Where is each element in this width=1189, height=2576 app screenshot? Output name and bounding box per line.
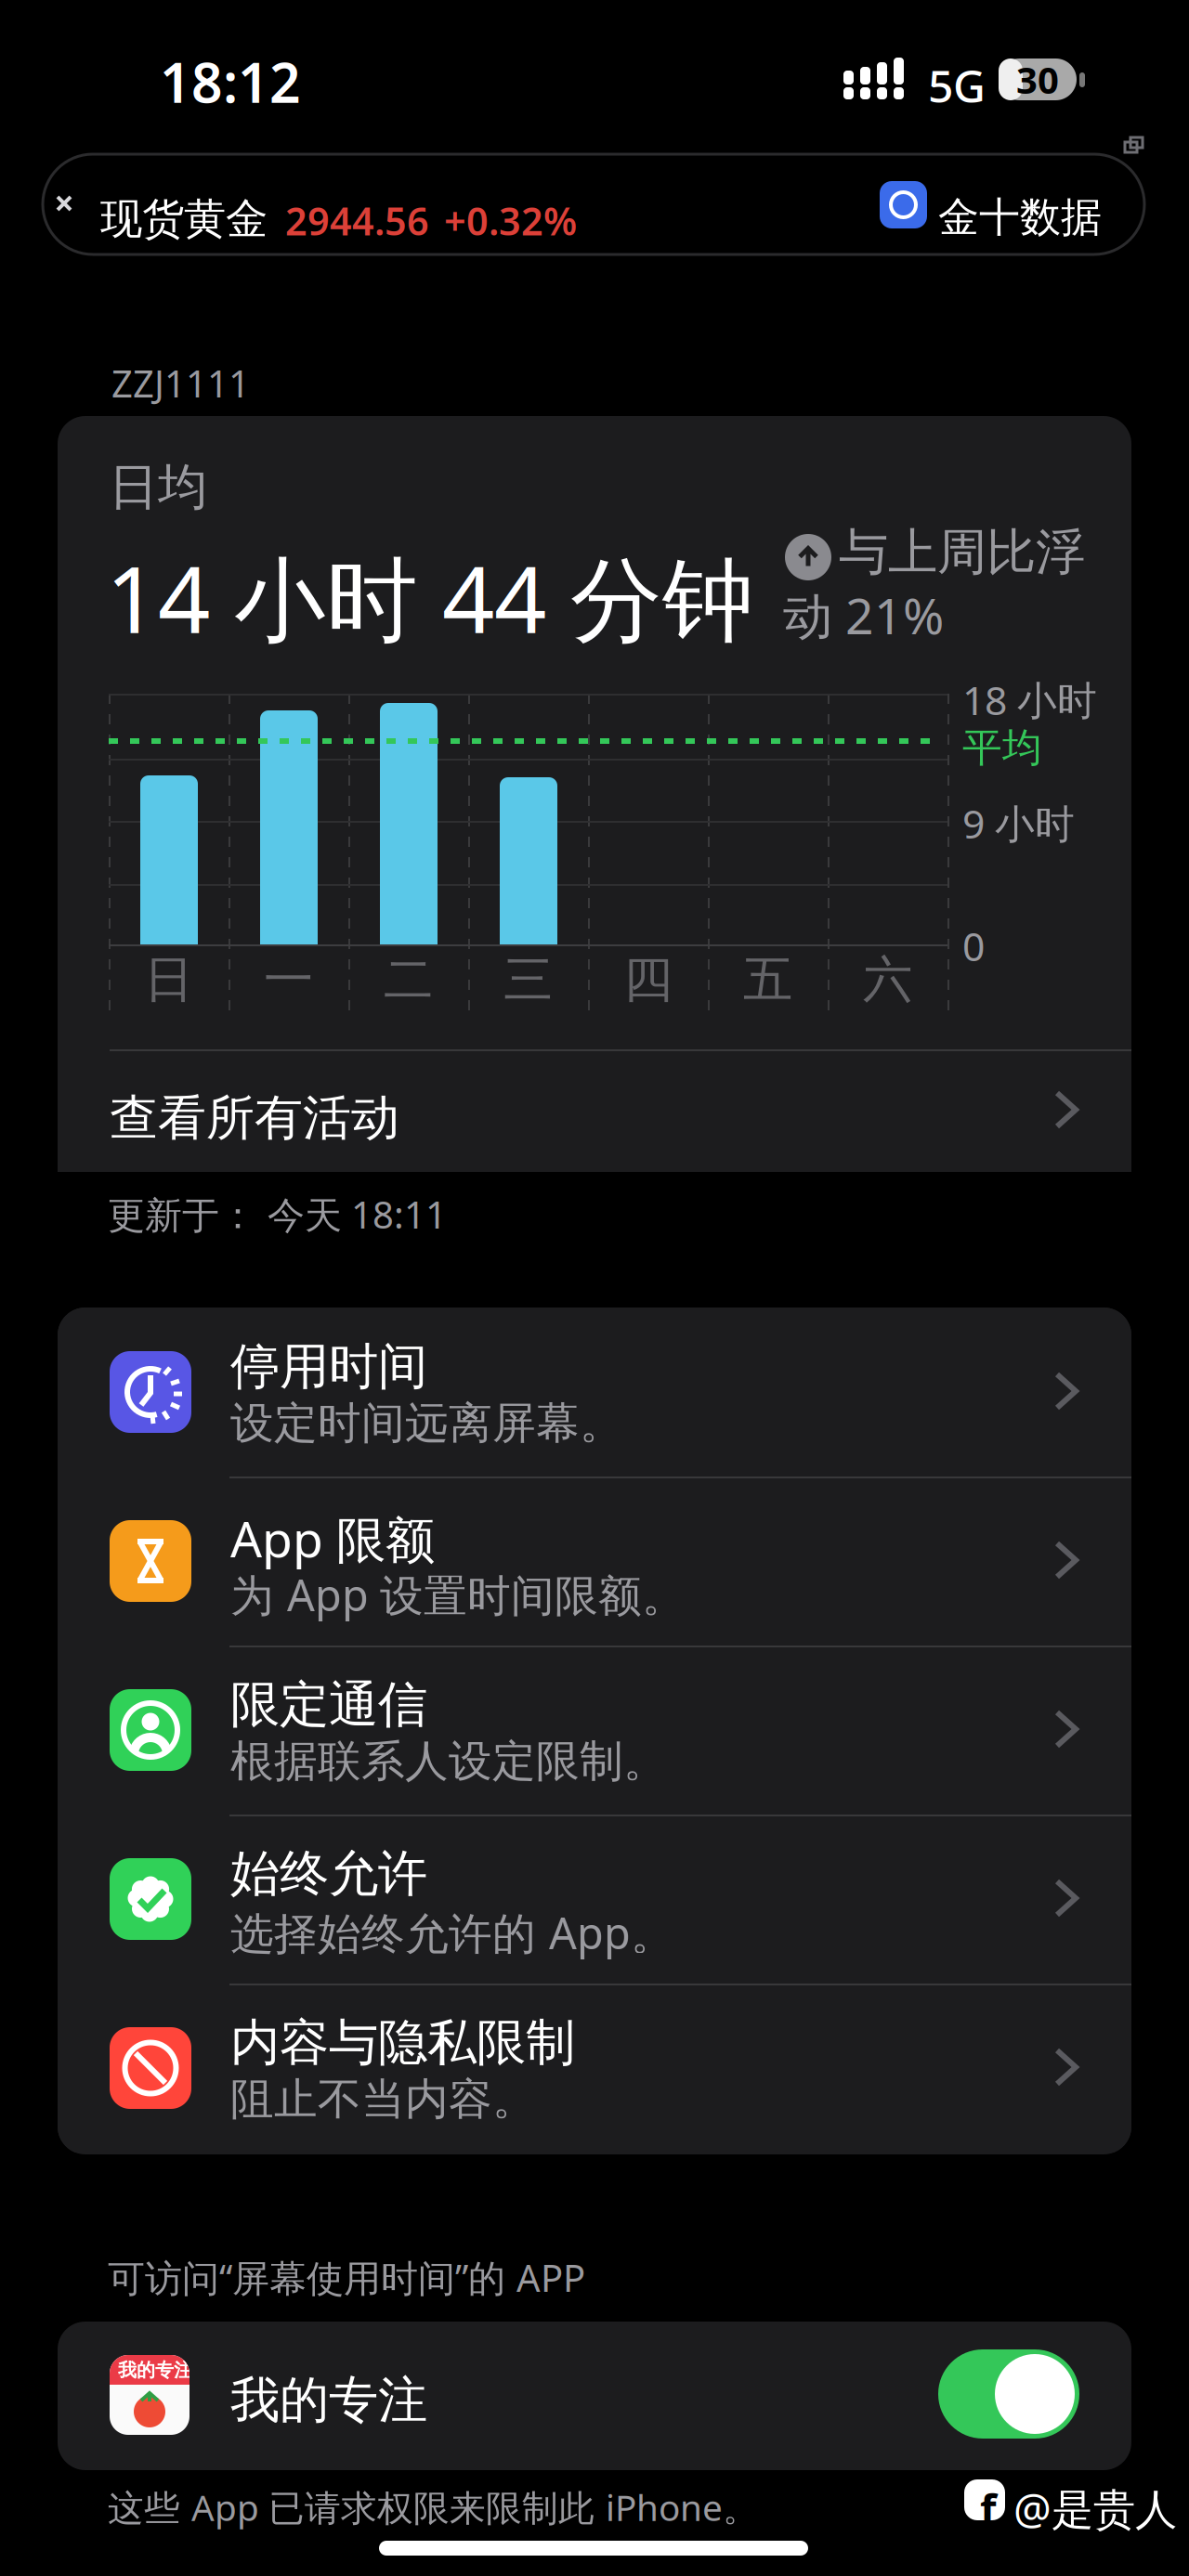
staticText: 始终允许 bbox=[230, 1843, 427, 1904]
staticText: 二 bbox=[384, 949, 433, 1010]
staticText: 0 bbox=[962, 919, 985, 972]
staticText: 查看所有活动 bbox=[110, 1088, 399, 1148]
staticText: 限定通信 bbox=[230, 1674, 427, 1735]
staticText: @是贵人 bbox=[1013, 2480, 1177, 2536]
staticText: 六 bbox=[863, 949, 912, 1010]
staticText: +0.32% bbox=[444, 195, 577, 246]
staticText: 现货黄金 bbox=[100, 193, 268, 245]
staticText: 与上周比浮 bbox=[839, 522, 1085, 583]
staticText: 2944.56 bbox=[285, 195, 429, 246]
staticText: 9 小时 bbox=[962, 797, 1075, 849]
button[interactable]: 关闭横幅 bbox=[35, 175, 93, 232]
button[interactable]: 停用时间 bbox=[58, 1308, 1131, 1477]
staticText: 阻止不当内容。 bbox=[230, 2073, 536, 2126]
staticText: 内容与隐私限制 bbox=[230, 2012, 575, 2073]
staticText: 平均 bbox=[962, 723, 1042, 772]
button[interactable]: App 限额 bbox=[58, 1477, 1131, 1646]
staticText: ZZJ1111 bbox=[111, 358, 250, 408]
button[interactable]: 限定通信 bbox=[58, 1646, 1131, 1815]
staticText: 14 小时 44 分钟 bbox=[106, 537, 754, 658]
staticText: 选择始终允许的 App。 bbox=[230, 1904, 674, 1961]
staticText: 可访问“屏幕使用时间”的 APP bbox=[108, 2253, 585, 2302]
staticText: 18 小时 bbox=[962, 673, 1097, 726]
staticText: App 限额 bbox=[230, 1505, 435, 1571]
staticText: 停用时间 bbox=[230, 1336, 427, 1397]
staticText: 日均 bbox=[109, 457, 207, 518]
staticText: 三 bbox=[503, 949, 553, 1010]
button[interactable]: 查看所有活动 bbox=[58, 1049, 1131, 1172]
staticText: 根据联系人设定限制。 bbox=[230, 1735, 667, 1788]
staticText: 更新于： 今天 18:11 bbox=[108, 1190, 447, 1239]
staticText: 动 21% bbox=[783, 582, 944, 648]
staticText: 日 bbox=[144, 949, 193, 1010]
staticText: 我的专注 bbox=[230, 2370, 427, 2431]
staticText: 五 bbox=[743, 949, 792, 1010]
button[interactable]: 始终允许 bbox=[58, 1815, 1131, 1984]
staticText: 为 App 设置时间限额。 bbox=[230, 1566, 686, 1623]
staticText: 设定时间远离屏幕。 bbox=[230, 1397, 623, 1450]
button[interactable]: 我的专注开关 bbox=[938, 2349, 1079, 2439]
staticText: 我的专注 bbox=[118, 2359, 192, 2382]
staticText: 这些 App 已请求权限来限制此 iPhone。 bbox=[108, 2483, 759, 2531]
button[interactable]: 内容与隐私限制 bbox=[58, 1984, 1131, 2153]
staticText: 一 bbox=[264, 949, 313, 1010]
staticText: 四 bbox=[623, 949, 673, 1010]
staticText: 30 bbox=[1016, 55, 1059, 104]
staticText: 18:12 bbox=[160, 46, 301, 118]
staticText: 金十数据 bbox=[938, 192, 1102, 242]
staticText: 5G bbox=[928, 56, 986, 115]
staticText: f bbox=[980, 2480, 997, 2536]
